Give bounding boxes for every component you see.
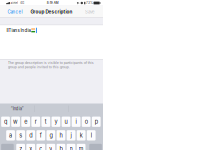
staticText: Group Description — [30, 9, 72, 15]
staticText: d — [29, 132, 32, 139]
staticText: w — [13, 118, 18, 125]
staticText: “India” — [11, 106, 24, 111]
staticText: 4G — [20, 1, 24, 5]
staticText: m — [79, 146, 84, 150]
staticText: l — [91, 132, 92, 139]
button[interactable]: q — [1, 117, 10, 127]
button[interactable]: o — [82, 117, 91, 127]
staticText: Save — [85, 9, 95, 14]
staticText: r — [35, 118, 37, 125]
staticText: IITians India — [6, 28, 30, 33]
button[interactable]: a — [6, 130, 15, 140]
staticText: k — [80, 132, 83, 139]
staticText: o — [85, 118, 88, 125]
button[interactable]: c — [36, 144, 45, 150]
staticText: x — [29, 146, 32, 150]
button[interactable]: i — [72, 117, 80, 127]
staticText: s — [19, 132, 22, 139]
button[interactable]: t — [41, 117, 50, 127]
staticText: q — [4, 118, 7, 125]
staticText: b — [59, 146, 62, 150]
button[interactable]: b — [57, 144, 65, 150]
staticText: airtel — [10, 1, 18, 5]
staticText: y — [54, 118, 57, 125]
button[interactable]: u — [62, 117, 70, 127]
button[interactable]: f — [36, 130, 45, 140]
button[interactable]: p — [92, 117, 101, 127]
staticText: a — [9, 132, 12, 139]
staticText: j — [70, 132, 71, 139]
button[interactable]: l — [87, 130, 96, 140]
button[interactable]: n — [67, 144, 75, 150]
staticText: v — [49, 146, 52, 150]
button[interactable]: w — [11, 117, 20, 127]
staticText: e — [24, 118, 27, 125]
staticText: p — [95, 118, 98, 125]
staticText: u — [64, 118, 67, 125]
staticText: f — [40, 132, 42, 139]
button[interactable]: g — [46, 130, 55, 140]
staticText: t — [45, 118, 47, 125]
button[interactable]: k — [77, 130, 86, 140]
staticText: h — [59, 132, 62, 139]
button[interactable]: s — [16, 130, 25, 140]
button[interactable]: Cancel — [5, 6, 25, 18]
staticText: i — [76, 118, 77, 125]
button[interactable]: Save — [82, 6, 98, 18]
button[interactable]: m — [77, 144, 85, 150]
staticText: c — [39, 146, 42, 150]
button[interactable]: r — [31, 117, 40, 127]
staticText: n — [69, 146, 72, 150]
button[interactable]: z — [16, 144, 25, 150]
staticText: 73% — [86, 1, 93, 5]
button[interactable]: y — [51, 117, 60, 127]
button[interactable]: e — [21, 117, 30, 127]
button[interactable]: d — [26, 130, 35, 140]
button[interactable]: v — [46, 144, 55, 150]
staticText: Cancel — [7, 9, 22, 14]
button[interactable]: x — [26, 144, 35, 150]
button[interactable]: h — [57, 130, 65, 140]
staticText: g — [49, 132, 52, 139]
staticText: The group description is visible to part… — [8, 60, 94, 69]
staticText: z — [19, 146, 22, 150]
button[interactable]: IITians India — [6, 14, 98, 46]
button[interactable]: j — [67, 130, 75, 140]
staticText: 8:19 AM — [47, 1, 59, 5]
